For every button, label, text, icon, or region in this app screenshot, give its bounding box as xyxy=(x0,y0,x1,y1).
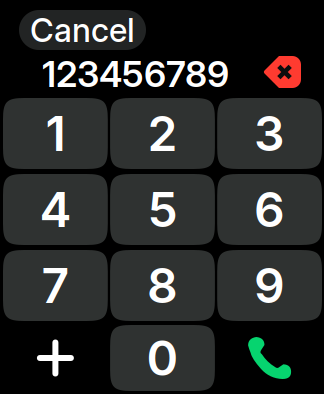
button[interactable]: 9 xyxy=(217,250,322,321)
staticText: 8 xyxy=(147,256,178,315)
staticText: 2 xyxy=(147,104,177,163)
button[interactable]: 6 xyxy=(217,174,322,245)
button[interactable]: 5 xyxy=(110,174,215,245)
button[interactable]: 7 xyxy=(3,250,108,321)
button[interactable]: 8 xyxy=(110,250,215,321)
staticText: Cancel xyxy=(30,10,135,50)
button[interactable]: Call xyxy=(217,325,322,391)
staticText: 3 xyxy=(254,104,285,163)
button[interactable]: 4 xyxy=(3,174,108,245)
staticText: 1 xyxy=(45,104,65,163)
button[interactable]: 2 xyxy=(110,98,215,169)
button[interactable]: 1 xyxy=(3,98,108,169)
staticText: 123456789 xyxy=(42,52,229,96)
button[interactable]: Plus xyxy=(3,325,108,391)
button[interactable]: 0 xyxy=(110,325,215,391)
staticText: 0 xyxy=(146,329,178,387)
staticText: 4 xyxy=(39,180,71,239)
button[interactable]: Delete xyxy=(263,56,301,88)
button[interactable]: Cancel xyxy=(19,10,146,50)
button[interactable]: 3 xyxy=(217,98,322,169)
staticText: 7 xyxy=(41,256,69,315)
staticText: 9 xyxy=(254,256,285,315)
staticText: 6 xyxy=(254,180,285,239)
staticText: 5 xyxy=(147,180,177,239)
